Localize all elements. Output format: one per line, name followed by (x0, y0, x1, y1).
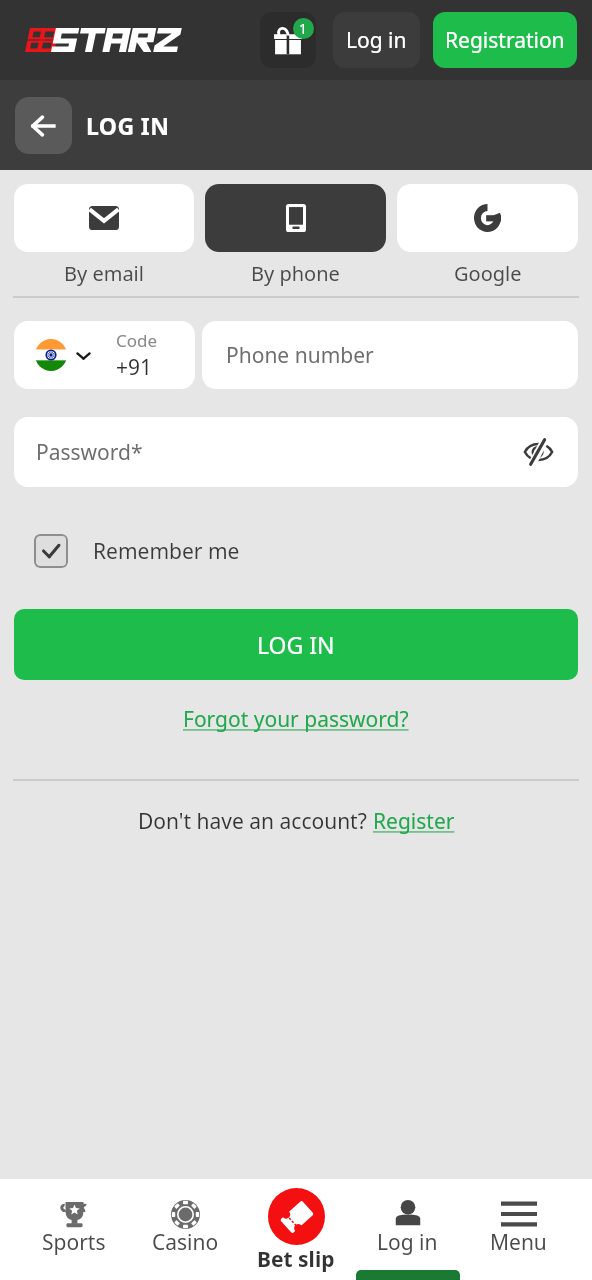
button[interactable]: Register (373, 807, 455, 836)
button[interactable]: By phone (205, 184, 386, 287)
staticText: Password* (36, 438, 143, 467)
staticText: Remember me (93, 537, 240, 566)
button[interactable]: Google (397, 184, 578, 287)
staticText: Sports (42, 1228, 106, 1257)
button[interactable]: Menu (463, 1179, 574, 1257)
button[interactable]: Forgot your password? (183, 705, 409, 734)
button[interactable]: Sports (18, 1179, 130, 1257)
button[interactable]: Log in (352, 1179, 463, 1257)
button[interactable]: Code (14, 321, 195, 389)
button[interactable]: Phone number (202, 321, 578, 389)
button[interactable]: Remember me (34, 534, 240, 568)
button[interactable]: Show password (516, 430, 560, 474)
button[interactable]: Casino (130, 1179, 241, 1257)
staticText: Code (116, 329, 158, 352)
staticText: Phone number (226, 341, 374, 370)
staticText: LOG IN (86, 110, 170, 141)
staticText: Casino (152, 1228, 219, 1257)
button[interactable]: By email (14, 184, 194, 287)
button[interactable]: Back (15, 97, 72, 154)
button[interactable]: Bet slip (257, 1188, 335, 1274)
staticText: Bet slip (257, 1245, 335, 1274)
button[interactable]: LOG IN (14, 609, 578, 680)
staticText: Don't have an account? (138, 807, 373, 836)
staticText: 1 (299, 19, 308, 38)
staticText: Registration (445, 26, 565, 55)
button[interactable]: Registration (433, 12, 577, 68)
button[interactable]: Log in (333, 12, 420, 68)
staticText: Log in (346, 26, 407, 55)
staticText: By email (64, 260, 144, 287)
staticText: Register (373, 807, 455, 836)
staticText: Forgot your password? (183, 705, 409, 734)
button[interactable]: Password* (14, 417, 578, 487)
staticText: +91 (116, 353, 153, 382)
staticText: Menu (490, 1228, 547, 1257)
staticText: Log in (377, 1228, 438, 1257)
staticText: By phone (251, 260, 340, 287)
staticText: LOG IN (257, 629, 335, 660)
staticText: Google (454, 260, 522, 287)
button[interactable]: Bonuses (260, 12, 316, 68)
